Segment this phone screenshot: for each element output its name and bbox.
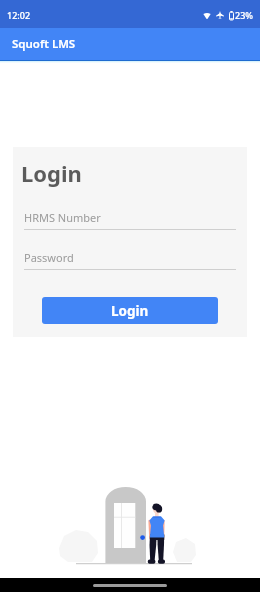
- button[interactable]: Login: [42, 297, 218, 324]
- button[interactable]: Password: [24, 250, 236, 270]
- staticText: 12:02: [7, 9, 31, 21]
- staticText: 23%: [235, 9, 253, 21]
- staticText: HRMS Number: [24, 210, 101, 225]
- staticText: Password: [24, 250, 74, 265]
- staticText: Squoft LMS: [12, 36, 76, 52]
- button[interactable]: HRMS Number: [24, 210, 236, 230]
- staticText: Login: [21, 158, 82, 188]
- staticText: Login: [111, 302, 149, 320]
